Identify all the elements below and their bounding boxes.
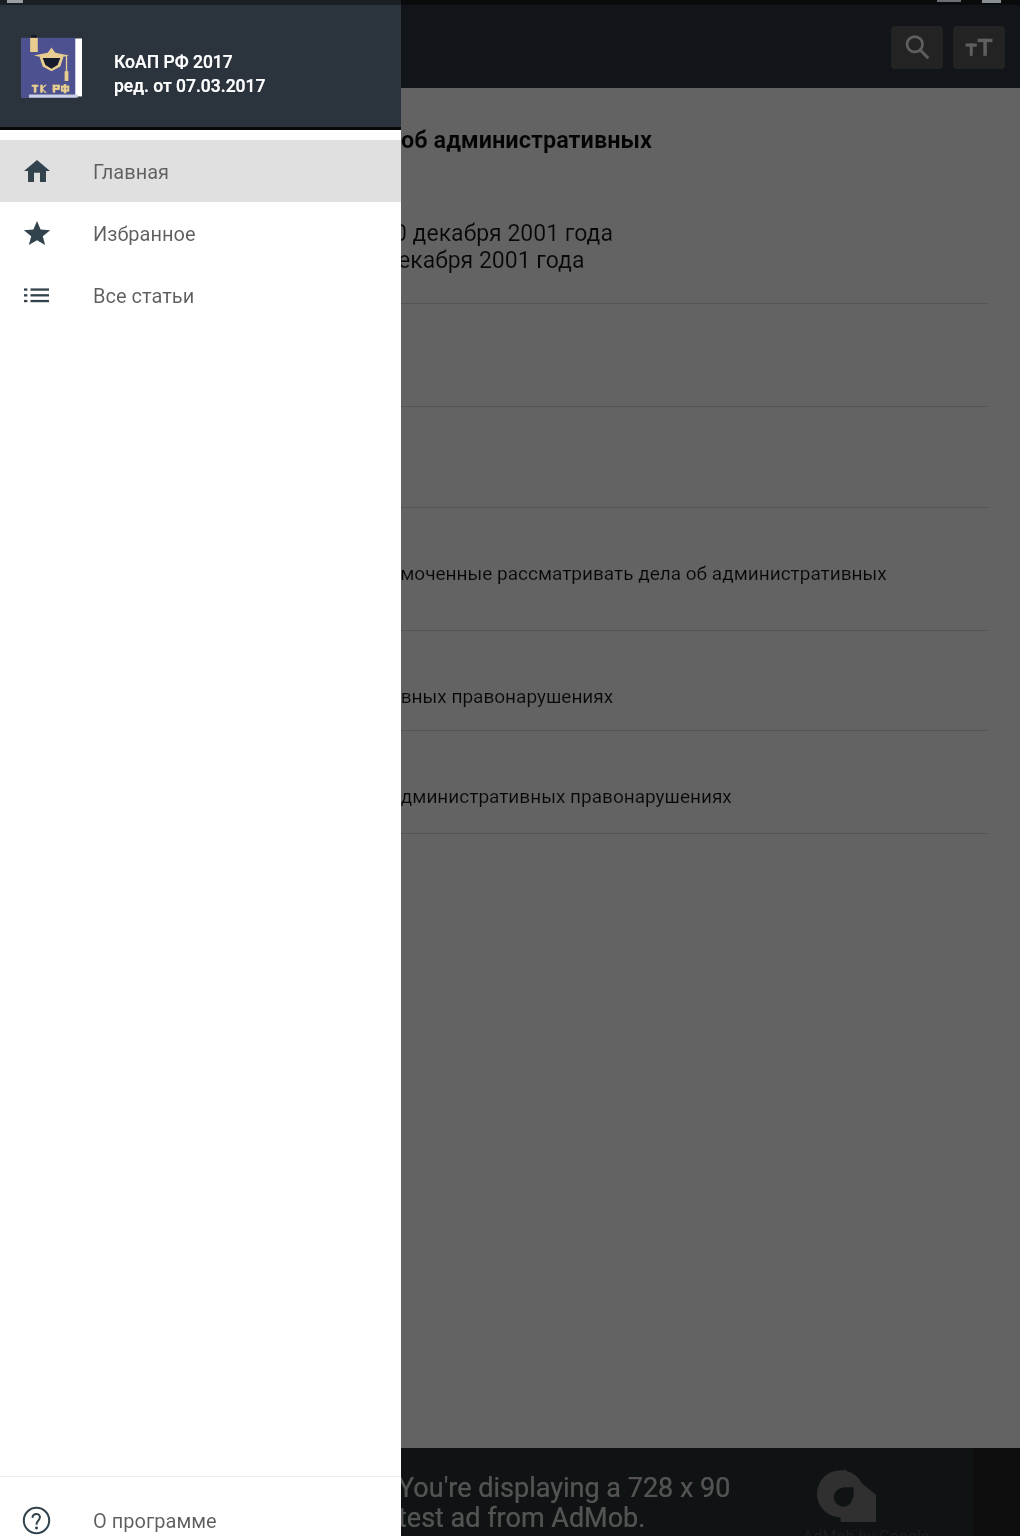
staticText: AdMob by Google [803,1527,930,1536]
button[interactable]: О программе [0,1489,401,1536]
button[interactable]: Избранное [0,202,401,264]
button[interactable]: Search [891,26,943,69]
staticText: You're displaying a 728 x 90 test ad fro… [398,1472,731,1533]
staticText: Раздел III. СУДЬИ, ОРГАНЫ, ДОЛЖНОСТНЫЕ Л… [37,541,887,607]
staticText: Принят Государственной Думой 20 декабря … [26,220,613,274]
staticText: Избранное [93,222,196,245]
button[interactable]: Close navigation drawer [0,0,1020,1536]
button[interactable]: Раздел I. ОБЩИЕ ПОЛОЖЕНИЯ [0,303,1020,406]
button[interactable]: Раздел IV. Производство по делам об адми… [0,630,1020,730]
staticText: КоАП РФ 2017 ред. от 07.03.2017 [114,52,266,96]
button[interactable]: Раздел II. ОСОБЕННАЯ ЧАСТЬ [0,406,1020,507]
button[interactable]: Text size [953,26,1005,69]
button[interactable]: Раздел III. СУДЬИ, ОРГАНЫ, ДОЛЖНОСТНЫЕ Л… [0,507,1020,630]
staticText: Кодекс Российской Федерации об администр… [46,126,652,184]
staticText: Все статьи [93,284,195,307]
staticText: Раздел IV. Производство по делам об адми… [24,664,614,708]
button[interactable]: Все статьи [0,264,401,326]
button[interactable]: Главная [0,140,401,202]
staticText: О программе [93,1509,217,1532]
button[interactable]: Раздел V. Исполнение постановлений по де… [0,730,1020,833]
staticText: Главная [93,160,170,183]
staticText: Раздел V. Исполнение постановлений по де… [20,764,732,808]
